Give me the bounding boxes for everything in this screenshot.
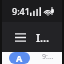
staticText: 9:41 (12, 5, 30, 17)
staticText: 9:41 (42, 52, 55, 62)
staticText: A (16, 52, 23, 64)
staticText: Inbox (36, 30, 54, 45)
button[interactable]: Menu (10, 27, 30, 47)
button[interactable]: A (2, 52, 62, 64)
